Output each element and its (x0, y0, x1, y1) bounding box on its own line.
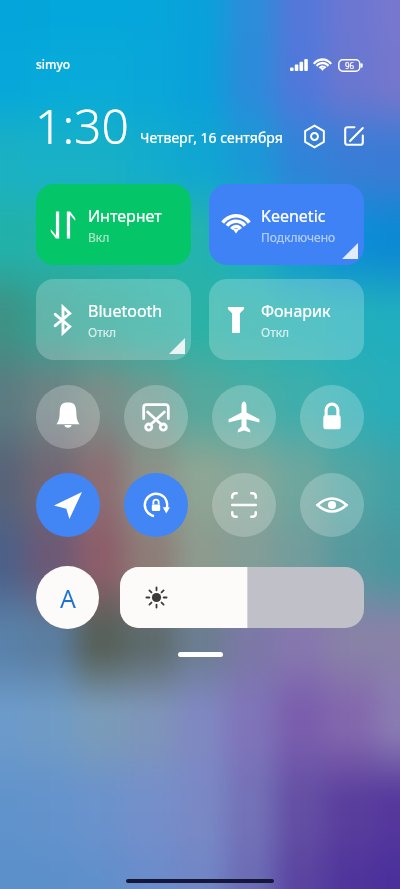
staticText: Фонарик (261, 300, 331, 322)
staticText: Откл (88, 324, 117, 340)
button[interactable]: Фонарик (209, 279, 364, 360)
staticText: Bluetooth (88, 300, 163, 322)
button[interactable]: Notifications (36, 385, 100, 449)
button[interactable]: Lock (300, 385, 364, 449)
staticText: A (60, 581, 76, 615)
staticText: Откл (261, 324, 290, 340)
staticText: Четверг, 16 сентября (140, 128, 283, 147)
button[interactable]: Edit (338, 120, 370, 152)
button[interactable]: Reading mode (300, 473, 364, 537)
staticText: Интернет (88, 205, 162, 227)
button[interactable]: Auto rotate (124, 473, 188, 537)
button[interactable]: Интернет (36, 184, 191, 265)
staticText: 96 (345, 60, 355, 71)
button[interactable]: Location (36, 473, 100, 537)
button[interactable]: A (36, 566, 99, 629)
button[interactable]: Keenetic (209, 184, 364, 265)
staticText: Вкл (88, 229, 110, 245)
staticText: Подключено (261, 229, 336, 245)
button[interactable]: Screenshot (124, 385, 188, 449)
button[interactable]: Bluetooth (36, 279, 191, 360)
staticText: Keenetic (261, 205, 326, 227)
button[interactable]: Brightness (120, 567, 364, 628)
button[interactable]: Scan (212, 473, 276, 537)
staticText: simyo (36, 56, 71, 72)
button[interactable]: Airplane mode (212, 385, 276, 449)
button[interactable]: Settings (298, 120, 330, 152)
staticText: 1:30 (35, 93, 129, 158)
